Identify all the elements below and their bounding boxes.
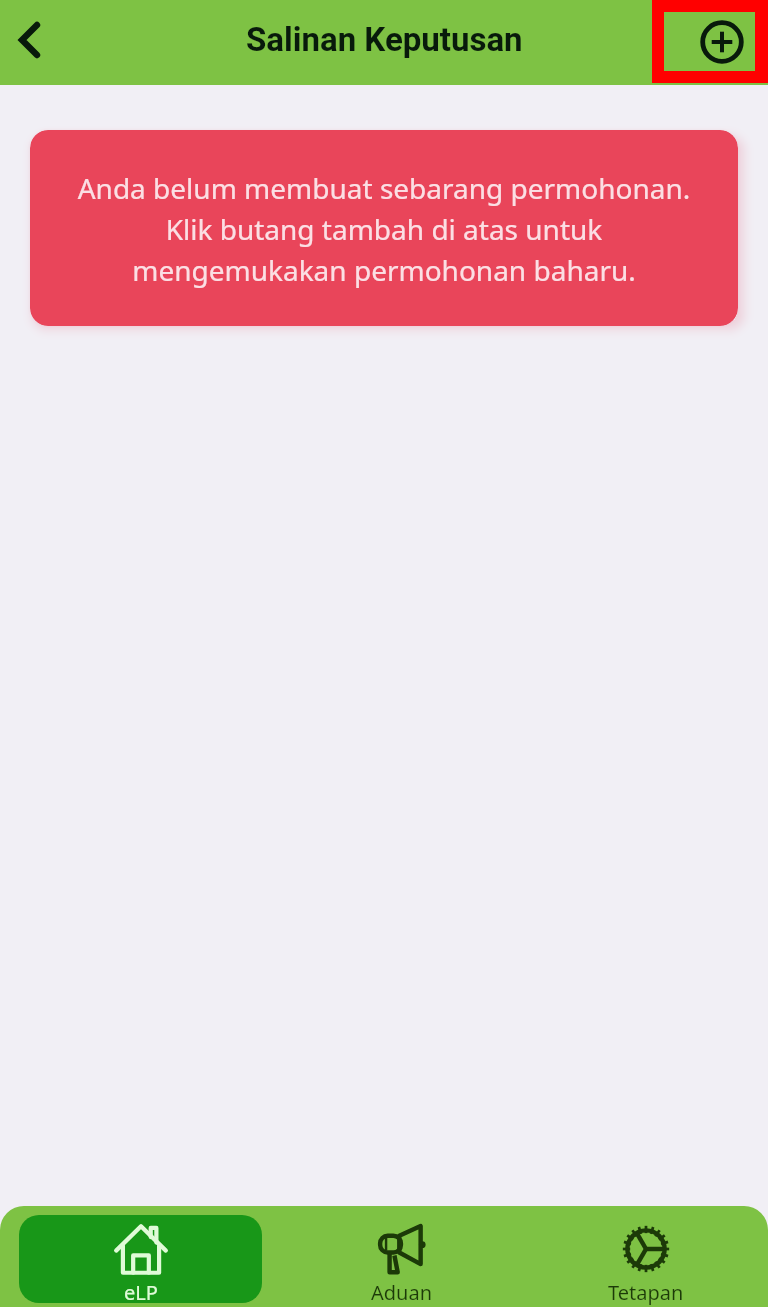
staticText: Anda belum membuat sebarang permohonan. … <box>30 169 738 289</box>
button[interactable]: Back <box>0 0 58 85</box>
button[interactable]: Tetapan <box>525 1215 765 1303</box>
button[interactable]: Aduan <box>282 1215 522 1303</box>
staticText: Salinan Keputusan <box>246 20 523 59</box>
button[interactable]: eLP <box>19 1215 262 1303</box>
button[interactable]: Add <box>676 0 768 85</box>
staticText: eLP <box>124 1279 158 1303</box>
staticText: Tetapan <box>608 1279 684 1306</box>
staticText: Aduan <box>371 1279 433 1306</box>
